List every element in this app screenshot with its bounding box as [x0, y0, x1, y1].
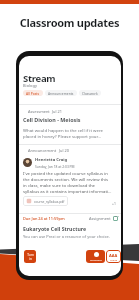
staticText: I've posted the updated course syllabus … [23, 170, 119, 194]
staticText: All Posts [26, 91, 40, 95]
staticText: AAA [109, 253, 118, 258]
staticText: Sunday, Jan 18 at 2:03 PM [35, 164, 75, 168]
staticText: Classwork [82, 91, 98, 95]
staticText: +1 [112, 201, 116, 206]
staticText: Comment [90, 258, 102, 261]
staticText: Announcement [28, 148, 57, 153]
staticText: Jul 20 [59, 148, 69, 153]
staticText: You can use Prezi or a resource of your … [23, 234, 110, 239]
staticText: Assignment [89, 216, 111, 221]
staticText: Stream [23, 72, 56, 85]
staticText: Biology [23, 83, 38, 88]
staticText: Announcements [48, 91, 74, 95]
button[interactable]: All Posts [23, 90, 43, 96]
button[interactable]: Grade [106, 250, 121, 263]
staticText: What would happen to the cell if it were… [23, 127, 117, 139]
staticText: Cell Division - Meiosis [23, 116, 81, 123]
button[interactable]: Classwork [79, 90, 101, 96]
staticText: Grade [110, 258, 118, 261]
staticText: Classroom updates [0, 15, 139, 30]
staticText: course_syllabus.pdf [34, 199, 65, 203]
button[interactable]: course_syllabus.pdf [23, 196, 68, 206]
staticText: Due Jan 24 at 11:59pm [23, 216, 65, 221]
button[interactable]: Comment [86, 250, 105, 263]
button[interactable]: Announcements [45, 90, 77, 96]
staticText: Turn in [27, 253, 34, 261]
staticText: Jul 21 [52, 109, 62, 114]
button[interactable]: Turn in [24, 250, 36, 263]
staticText: ··· [115, 213, 120, 220]
staticText: Henrietta Craig [35, 157, 68, 163]
staticText: Eukaryote Cell Structure [23, 225, 87, 232]
staticText: Assessment [28, 109, 50, 114]
